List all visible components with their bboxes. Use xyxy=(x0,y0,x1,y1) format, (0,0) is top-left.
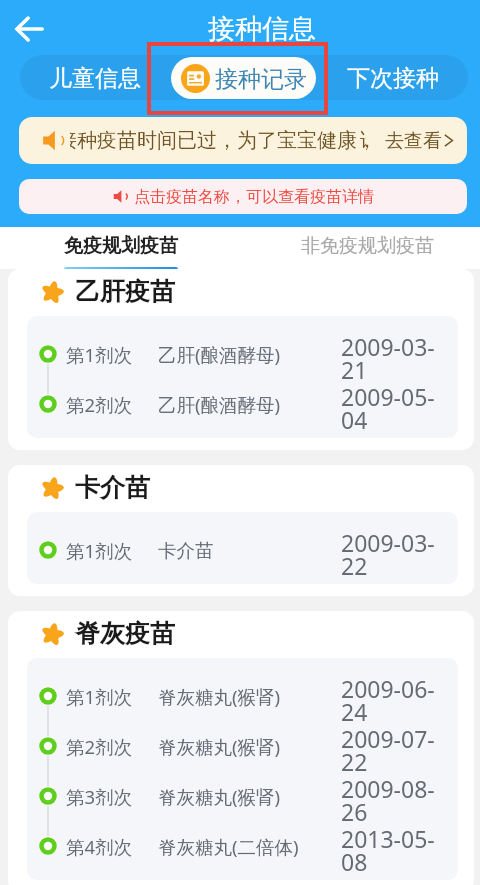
staticText: 接种记录 xyxy=(215,65,307,94)
button[interactable]: 非免疫规划疫苗 xyxy=(277,227,457,269)
staticText: 脊灰糖丸(猴肾) xyxy=(158,684,281,709)
staticText: 2009-06-24 xyxy=(341,673,442,723)
button[interactable]: 接种记录 xyxy=(171,57,316,99)
button[interactable]: 第1剂次 xyxy=(27,525,458,575)
staticText: 接种信息 xyxy=(208,12,316,46)
staticText: 2009-07-22 xyxy=(341,723,442,773)
staticText: 脊灰糖丸(二倍体) xyxy=(158,834,299,859)
staticText: 2013-05-08 xyxy=(341,823,442,873)
staticText: 2009-03-21 xyxy=(341,331,442,381)
button[interactable]: 下次接种 xyxy=(318,55,468,100)
staticText: 乙肝(酿酒酵母) xyxy=(158,342,281,367)
staticText: 卡介苗 xyxy=(158,539,214,562)
staticText: 下次接种 xyxy=(347,64,439,93)
button[interactable]: 第4剂次 xyxy=(27,821,458,871)
button[interactable]: 接 xyxy=(19,117,467,164)
staticText: 2009-08-26 xyxy=(341,773,442,823)
staticText: 请 xyxy=(360,128,366,153)
staticText: 2009-05-04 xyxy=(341,381,442,431)
staticText: 点击疫苗名称，可以查看疫苗详情 xyxy=(134,187,374,207)
button[interactable]: 点击疫苗名称，可以查看疫苗详情 xyxy=(19,179,467,214)
staticText: 脊灰糖丸(猴肾) xyxy=(158,784,281,809)
button[interactable]: 儿童信息 xyxy=(20,55,169,100)
button[interactable]: 第2剂次 xyxy=(27,379,458,429)
staticText: 第2剂次 xyxy=(66,734,133,759)
staticText: 乙肝疫苗 xyxy=(75,276,175,307)
staticText: 第2剂次 xyxy=(66,392,133,417)
staticText: 2009-03-22 xyxy=(341,527,442,577)
staticText: 第1剂次 xyxy=(66,342,133,367)
staticText: 免疫规划疫苗 xyxy=(64,234,178,258)
staticText: 儿童信息 xyxy=(49,64,141,93)
button[interactable]: 第1剂次 xyxy=(27,671,458,721)
staticText: 去查看 xyxy=(385,129,442,153)
staticText: 非免疫规划疫苗 xyxy=(301,234,434,258)
button[interactable]: 第2剂次 xyxy=(27,721,458,771)
staticText: 第1剂次 xyxy=(66,538,133,563)
button[interactable]: 卡介苗 xyxy=(41,465,474,512)
staticText: 乙肝(酿酒酵母) xyxy=(158,392,281,417)
button[interactable]: Back xyxy=(9,9,49,49)
button[interactable]: 第3剂次 xyxy=(27,771,458,821)
button[interactable]: 乙肝疫苗 xyxy=(41,269,474,316)
button[interactable]: 脊灰疫苗 xyxy=(41,611,474,658)
button[interactable]: 第1剂次 xyxy=(27,329,458,379)
staticText: 脊灰疫苗 xyxy=(75,618,175,649)
staticText: 种疫苗时间已过，为了宝宝健康， xyxy=(77,128,377,153)
staticText: 第1剂次 xyxy=(66,684,133,709)
staticText: 脊灰糖丸(猴肾) xyxy=(158,734,281,759)
button[interactable]: 免疫规划疫苗 xyxy=(31,227,211,269)
staticText: 第4剂次 xyxy=(66,834,133,859)
staticText: 第3剂次 xyxy=(66,784,133,809)
staticText: 卡介苗 xyxy=(75,472,150,503)
